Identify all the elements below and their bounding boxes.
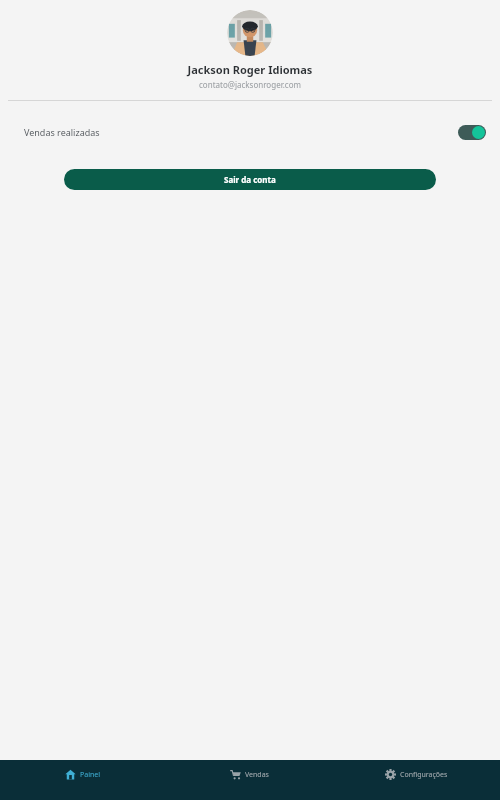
button[interactable]: Profile photo xyxy=(227,10,273,56)
button[interactable]: Vendas xyxy=(166,760,333,800)
other: Vendas realizadas toggle xyxy=(458,125,486,140)
staticText: Jackson Roger Idiomas xyxy=(0,62,500,77)
staticText: Painel xyxy=(80,770,101,780)
button[interactable]: Configurações xyxy=(333,760,500,800)
staticText: Vendas xyxy=(245,770,269,780)
button[interactable]: Vendas realizadas xyxy=(0,121,500,143)
button[interactable]: Painel xyxy=(0,760,166,800)
staticText: Vendas realizadas xyxy=(24,126,100,138)
staticText: contato@jacksonroger.com xyxy=(0,79,500,90)
staticText: Configurações xyxy=(400,770,448,780)
button[interactable]: Sair da conta xyxy=(64,169,436,190)
staticText: Sair da conta xyxy=(224,174,276,185)
